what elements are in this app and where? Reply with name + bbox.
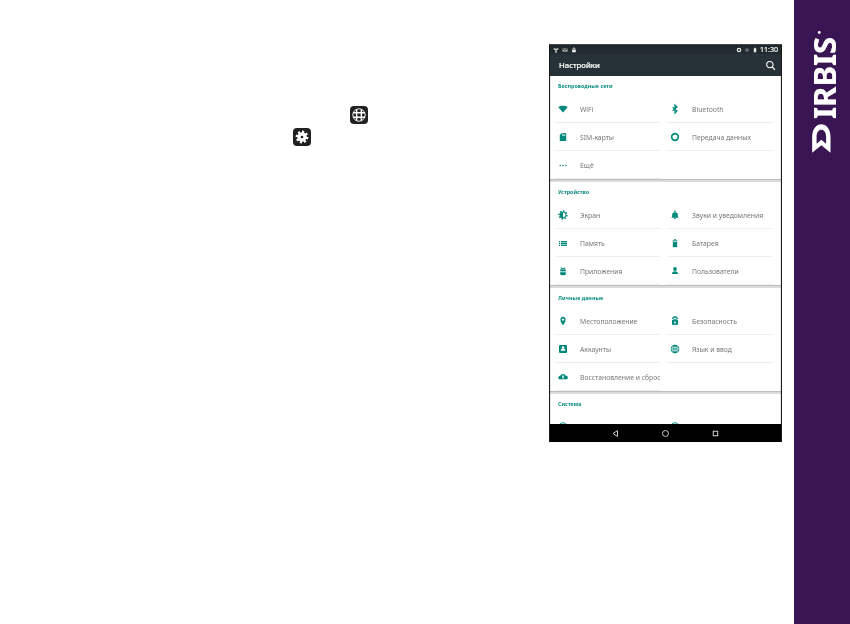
staticText: Личные данные	[558, 294, 604, 301]
staticText: IRBIS	[803, 36, 839, 119]
staticText: 11:30	[760, 45, 778, 54]
button[interactable]: WiFi	[549, 95, 661, 123]
button[interactable]: Безопасность	[661, 307, 781, 335]
button[interactable]: Search	[759, 54, 781, 76]
button[interactable]: Settings	[293, 128, 311, 146]
staticText: Настройки	[559, 60, 600, 71]
button[interactable]: Язык и ввод	[661, 335, 781, 363]
staticText: Восстановление и сброс	[580, 373, 661, 382]
staticText: Аккаунты	[580, 345, 612, 354]
staticText: Пользователи	[692, 267, 739, 276]
staticText: Устройство	[558, 188, 590, 195]
staticText: Звуки и уведомления	[692, 211, 764, 220]
button[interactable]: Recents	[706, 424, 724, 442]
button[interactable]: SIM-карты	[549, 123, 661, 151]
button[interactable]: Home	[656, 424, 674, 442]
button[interactable]: Передача данных	[661, 123, 781, 151]
button[interactable]: Аккаунты	[549, 335, 661, 363]
button[interactable]: Приложения	[549, 257, 661, 285]
staticText: Местоположение	[580, 317, 638, 326]
staticText: Память	[580, 239, 605, 248]
button[interactable]: Звуки и уведомления	[661, 201, 781, 229]
staticText: Система	[558, 400, 582, 407]
button[interactable]: Батарея	[661, 229, 781, 257]
staticText: Приложения	[580, 267, 623, 276]
button[interactable]: Ещё	[549, 151, 661, 179]
staticText: Беспроводные сети	[558, 82, 613, 89]
staticText: Bluetooth	[692, 105, 724, 114]
button[interactable]: Дата и время	[661, 413, 781, 424]
button[interactable]: Местоположение	[549, 307, 661, 335]
button[interactable]: Память	[549, 229, 661, 257]
staticText: Ещё	[580, 161, 594, 170]
staticText: Язык и ввод	[692, 345, 732, 354]
staticText: SIM-карты	[580, 133, 615, 142]
staticText: Безопасность	[692, 317, 737, 326]
button[interactable]: Восстановление и сброс	[549, 363, 661, 391]
staticText: Передача данных	[692, 133, 751, 142]
staticText: WiFi	[580, 105, 594, 114]
staticText: Батарея	[692, 239, 719, 248]
button[interactable]: Экран	[549, 201, 661, 229]
button[interactable]: Browser	[350, 106, 368, 124]
button[interactable]: Back	[606, 424, 624, 442]
button[interactable]: О планшете	[549, 413, 661, 424]
staticText: Экран	[580, 211, 601, 220]
button[interactable]: Пользователи	[661, 257, 781, 285]
button[interactable]: Bluetooth	[661, 95, 781, 123]
